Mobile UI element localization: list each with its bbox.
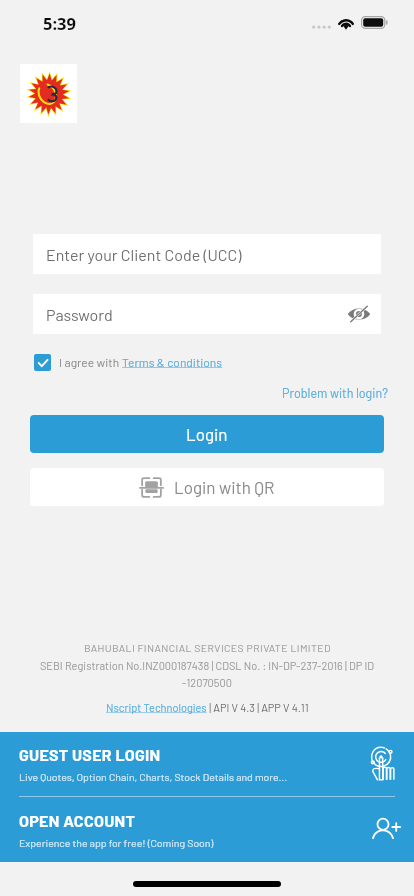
button[interactable]: Login with QR bbox=[30, 468, 384, 506]
button[interactable]: Password bbox=[33, 294, 381, 334]
staticText: BAHUBALI FINANCIAL SERVICES PRIVATE LIMI… bbox=[84, 641, 331, 654]
staticText: I agree with bbox=[59, 355, 122, 369]
staticText: Problem with login? bbox=[282, 385, 388, 400]
staticText: SEBI Registration No.INZ000187438 | CDSL… bbox=[32, 659, 382, 689]
button[interactable]: Problem with login? bbox=[282, 385, 388, 400]
other: Guest user login bbox=[371, 749, 395, 780]
staticText: GUEST USER LOGIN bbox=[19, 745, 161, 764]
button[interactable]: I agree with bbox=[34, 353, 223, 371]
staticText: Password bbox=[46, 305, 113, 324]
other: Open account bbox=[373, 817, 400, 842]
button[interactable]: GUEST USER LOGIN bbox=[0, 732, 414, 796]
staticText: OPEN ACCOUNT bbox=[19, 811, 136, 830]
button[interactable]: Enter your Client Code (UCC) bbox=[33, 234, 381, 274]
staticText: Login bbox=[186, 424, 228, 444]
button[interactable]: Nscript Technologies bbox=[106, 701, 207, 714]
button[interactable]: Show password bbox=[346, 301, 372, 327]
staticText: Enter your Client Code (UCC) bbox=[46, 245, 242, 264]
staticText: | API V 4.3 | APP V 4.11 bbox=[207, 701, 309, 714]
staticText: Terms & conditions bbox=[122, 355, 223, 369]
staticText: 5:39 bbox=[43, 12, 76, 34]
button[interactable]: Login bbox=[30, 415, 384, 453]
staticText: Experience the app for free! (Coming Soo… bbox=[19, 836, 214, 849]
staticText: Login with QR bbox=[174, 477, 275, 497]
button[interactable]: OPEN ACCOUNT bbox=[0, 797, 414, 862]
staticText: Live Quotes, Option Chain, Charts, Stock… bbox=[19, 770, 288, 783]
